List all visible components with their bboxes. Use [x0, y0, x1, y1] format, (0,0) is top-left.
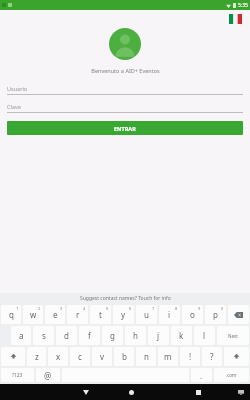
- staticText: 0: [221, 306, 224, 311]
- staticText: t: [99, 309, 102, 320]
- staticText: n: [144, 351, 149, 362]
- button[interactable]: Recent apps: [188, 384, 208, 400]
- button[interactable]: ?: [202, 347, 222, 366]
- staticText: ?: [210, 351, 214, 362]
- staticText: y: [121, 309, 126, 320]
- button[interactable]: .com: [214, 368, 249, 382]
- button[interactable]: a: [11, 326, 31, 345]
- staticText: x: [56, 351, 61, 362]
- button[interactable]: Hide keyboard: [234, 384, 248, 400]
- button[interactable]: j: [148, 326, 169, 345]
- staticText: o: [190, 309, 195, 320]
- button[interactable]: v: [92, 347, 112, 366]
- staticText: 4: [83, 306, 86, 311]
- button[interactable]: .: [191, 368, 212, 382]
- button[interactable]: o: [182, 305, 203, 324]
- staticText: .com: [226, 372, 237, 378]
- staticText: a: [19, 330, 24, 341]
- staticText: 1: [16, 306, 19, 311]
- button[interactable]: q: [1, 305, 21, 324]
- staticText: 2: [38, 306, 41, 311]
- button[interactable]: @: [36, 368, 60, 382]
- staticText: .: [200, 370, 203, 381]
- button[interactable]: h: [125, 326, 146, 345]
- staticText: s: [42, 330, 46, 341]
- staticText: v: [100, 351, 105, 362]
- button[interactable]: Next: [217, 326, 249, 345]
- staticText: q: [9, 309, 14, 320]
- button[interactable]: w: [23, 305, 43, 324]
- button[interactable]: g: [102, 326, 123, 345]
- staticText: @: [44, 370, 52, 381]
- staticText: 9: [198, 306, 201, 311]
- staticText: b: [122, 351, 127, 362]
- button[interactable]: n: [136, 347, 156, 366]
- button[interactable]: !: [180, 347, 200, 366]
- staticText: Clave: [7, 103, 21, 110]
- button[interactable]: ENTRAR: [7, 121, 243, 135]
- button[interactable]: y: [113, 305, 134, 324]
- staticText: f: [88, 330, 91, 341]
- staticText: k: [179, 330, 184, 341]
- button[interactable]: k: [171, 326, 192, 345]
- button[interactable]: ?123: [1, 368, 34, 382]
- button[interactable]: z: [27, 347, 46, 366]
- staticText: 8: [175, 306, 178, 311]
- staticText: Suggest contact names? Touch for info: [80, 295, 171, 302]
- button[interactable]: e: [45, 305, 65, 324]
- staticText: !: [189, 351, 192, 362]
- button[interactable]: Backspace: [228, 305, 249, 324]
- button[interactable]: s: [33, 326, 54, 345]
- button[interactable]: p: [205, 305, 226, 324]
- staticText: Next: [228, 333, 238, 339]
- staticText: j: [157, 330, 160, 341]
- button[interactable]: r: [67, 305, 88, 324]
- button[interactable]: Home: [120, 384, 142, 400]
- staticText: l: [203, 330, 206, 341]
- staticText: 3: [60, 306, 63, 311]
- staticText: e: [53, 309, 58, 320]
- staticText: ?123: [12, 372, 23, 379]
- button[interactable]: c: [70, 347, 90, 366]
- staticText: i: [168, 309, 171, 320]
- staticText: 7: [152, 306, 155, 311]
- staticText: ENTRAR: [114, 125, 136, 132]
- staticText: Usuario: [7, 85, 28, 92]
- staticText: p: [213, 309, 218, 320]
- staticText: z: [35, 351, 39, 362]
- staticText: m: [164, 351, 172, 362]
- staticText: r: [76, 309, 80, 320]
- button[interactable]: m: [158, 347, 178, 366]
- staticText: Benvenuto a AID+ Eventos: [91, 67, 160, 74]
- button[interactable]: t: [90, 305, 111, 324]
- staticText: w: [30, 309, 37, 320]
- button[interactable]: Shift: [1, 347, 25, 366]
- staticText: h: [133, 330, 138, 341]
- button[interactable]: f: [79, 326, 100, 345]
- button[interactable]: d: [56, 326, 77, 345]
- button[interactable]: Back: [76, 384, 96, 400]
- staticText: c: [78, 351, 82, 362]
- button[interactable]: u: [136, 305, 157, 324]
- button[interactable]: x: [48, 347, 68, 366]
- other: Language: [229, 14, 242, 24]
- staticText: d: [64, 330, 69, 341]
- staticText: g: [110, 330, 115, 341]
- staticText: 5: [106, 306, 109, 311]
- button[interactable]: i: [159, 305, 180, 324]
- button[interactable]: Shift: [224, 347, 249, 366]
- button[interactable]: Suggest contact names? Touch for info: [0, 293, 250, 304]
- button[interactable]: l: [194, 326, 215, 345]
- button[interactable]: b: [114, 347, 134, 366]
- staticText: 5:35: [238, 2, 248, 9]
- staticText: u: [144, 309, 149, 320]
- staticText: 6: [129, 306, 132, 311]
